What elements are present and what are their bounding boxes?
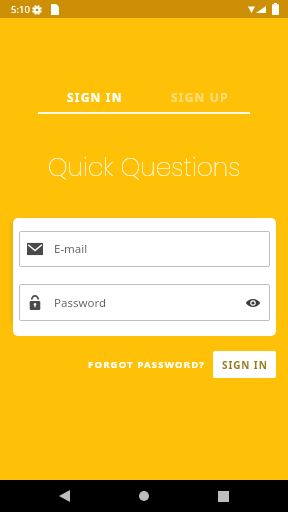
staticText: Quick Questions [0, 150, 288, 185]
button[interactable]: Show password [245, 295, 261, 311]
staticText: SIGN IN [67, 89, 123, 105]
staticText: Password [54, 295, 107, 311]
button[interactable]: Password [19, 284, 270, 321]
button[interactable]: Back [46, 480, 82, 512]
button[interactable]: SIGN UP [144, 86, 250, 108]
button[interactable]: Recent apps [205, 480, 241, 512]
button[interactable]: FORGOT PASSWORD? [88, 358, 206, 371]
staticText: FORGOT PASSWORD? [88, 358, 206, 371]
button[interactable]: SIGN IN [38, 86, 144, 108]
button[interactable]: E-mail [19, 231, 270, 267]
staticText: SIGN UP [171, 89, 229, 105]
staticText: 5:10 [11, 3, 30, 16]
staticText: SIGN IN [222, 358, 268, 372]
button[interactable]: SIGN IN [213, 351, 276, 378]
button[interactable]: Home [126, 480, 162, 512]
staticText: E-mail [54, 241, 88, 257]
